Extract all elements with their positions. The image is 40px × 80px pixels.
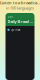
- staticText: Daily Broadcast: [7, 19, 32, 24]
- staticText: LIVE: [7, 15, 12, 18]
- staticText: in 100 languages: [6, 5, 34, 11]
- staticText: Listen to a broadcast: [0, 0, 40, 5]
- staticText: Up next: [10, 28, 20, 31]
